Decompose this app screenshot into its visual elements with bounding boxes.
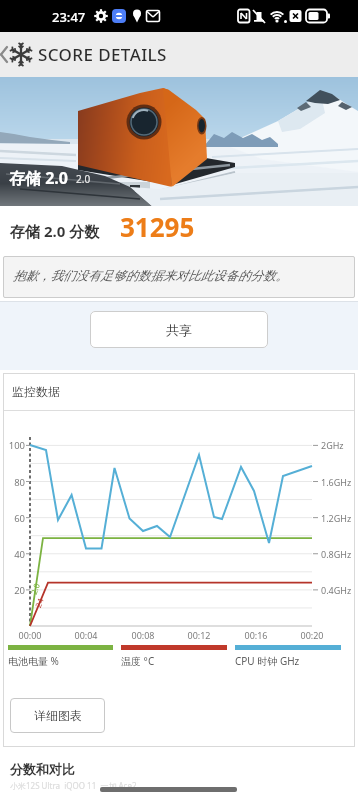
staticText: 1.2GHz (321, 512, 352, 524)
staticText: 0.8GHz (321, 548, 352, 560)
staticText: 80 (3, 476, 25, 489)
staticText: 24 (32, 596, 46, 609)
staticText: SCORE DETAILS (38, 43, 167, 66)
button[interactable]: 共享 (90, 311, 268, 348)
staticText: 00:00 (16, 629, 44, 641)
staticText: 2.0 (76, 172, 91, 186)
staticText: 小米12S Ultra iQOO 11 一加 Ace2 (10, 780, 137, 791)
staticText: 1.6GHz (321, 476, 352, 488)
staticText: 共享 (166, 322, 192, 338)
staticText: 监控数据 (12, 384, 60, 399)
staticText: 2.0 (28, 581, 42, 596)
staticText: 0.4GHz (321, 584, 352, 596)
staticText: 60 (3, 512, 25, 525)
staticText: 00:20 (298, 629, 326, 641)
staticText: 100 (3, 439, 25, 452)
staticText: 电池电量 % (8, 654, 59, 668)
staticText: 分数和对比 (10, 761, 75, 777)
staticText: 存储 2.0 分数 (10, 221, 100, 241)
staticText: 00:04 (72, 629, 100, 641)
staticText: 2GHz (321, 439, 344, 451)
button[interactable]: 详细图表 (10, 698, 105, 733)
staticText: 00:16 (242, 629, 270, 641)
staticText: CPU 时钟 GHz (235, 654, 300, 668)
staticText: 31295 (120, 209, 195, 244)
button[interactable] (0, 32, 12, 77)
staticText: 00:12 (185, 629, 213, 641)
staticText: 20 (3, 584, 25, 597)
staticText: 00:08 (129, 629, 157, 641)
staticText: 23:47 (52, 8, 86, 26)
staticText: 存储 2.0 (9, 167, 68, 189)
staticText: 抱歉，我们没有足够的数据来对比此设备的分数。 (13, 268, 288, 284)
staticText: 详细图表 (34, 708, 82, 723)
staticText: 40 (3, 548, 25, 561)
staticText: 温度 °C (121, 654, 155, 668)
